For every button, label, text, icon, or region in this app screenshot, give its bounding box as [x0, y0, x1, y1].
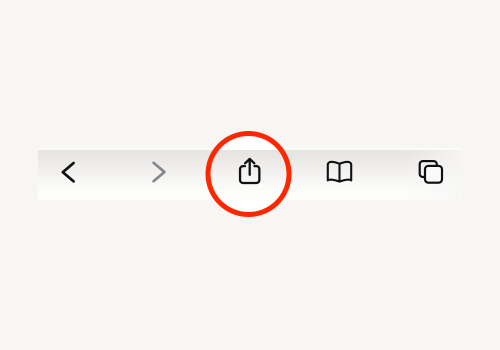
button[interactable]: Share	[228, 153, 272, 197]
button[interactable]: Back	[46, 150, 90, 194]
button[interactable]: Bookmarks	[317, 150, 361, 194]
button[interactable]: Tabs	[408, 150, 452, 194]
button[interactable]: Forward	[137, 150, 181, 194]
